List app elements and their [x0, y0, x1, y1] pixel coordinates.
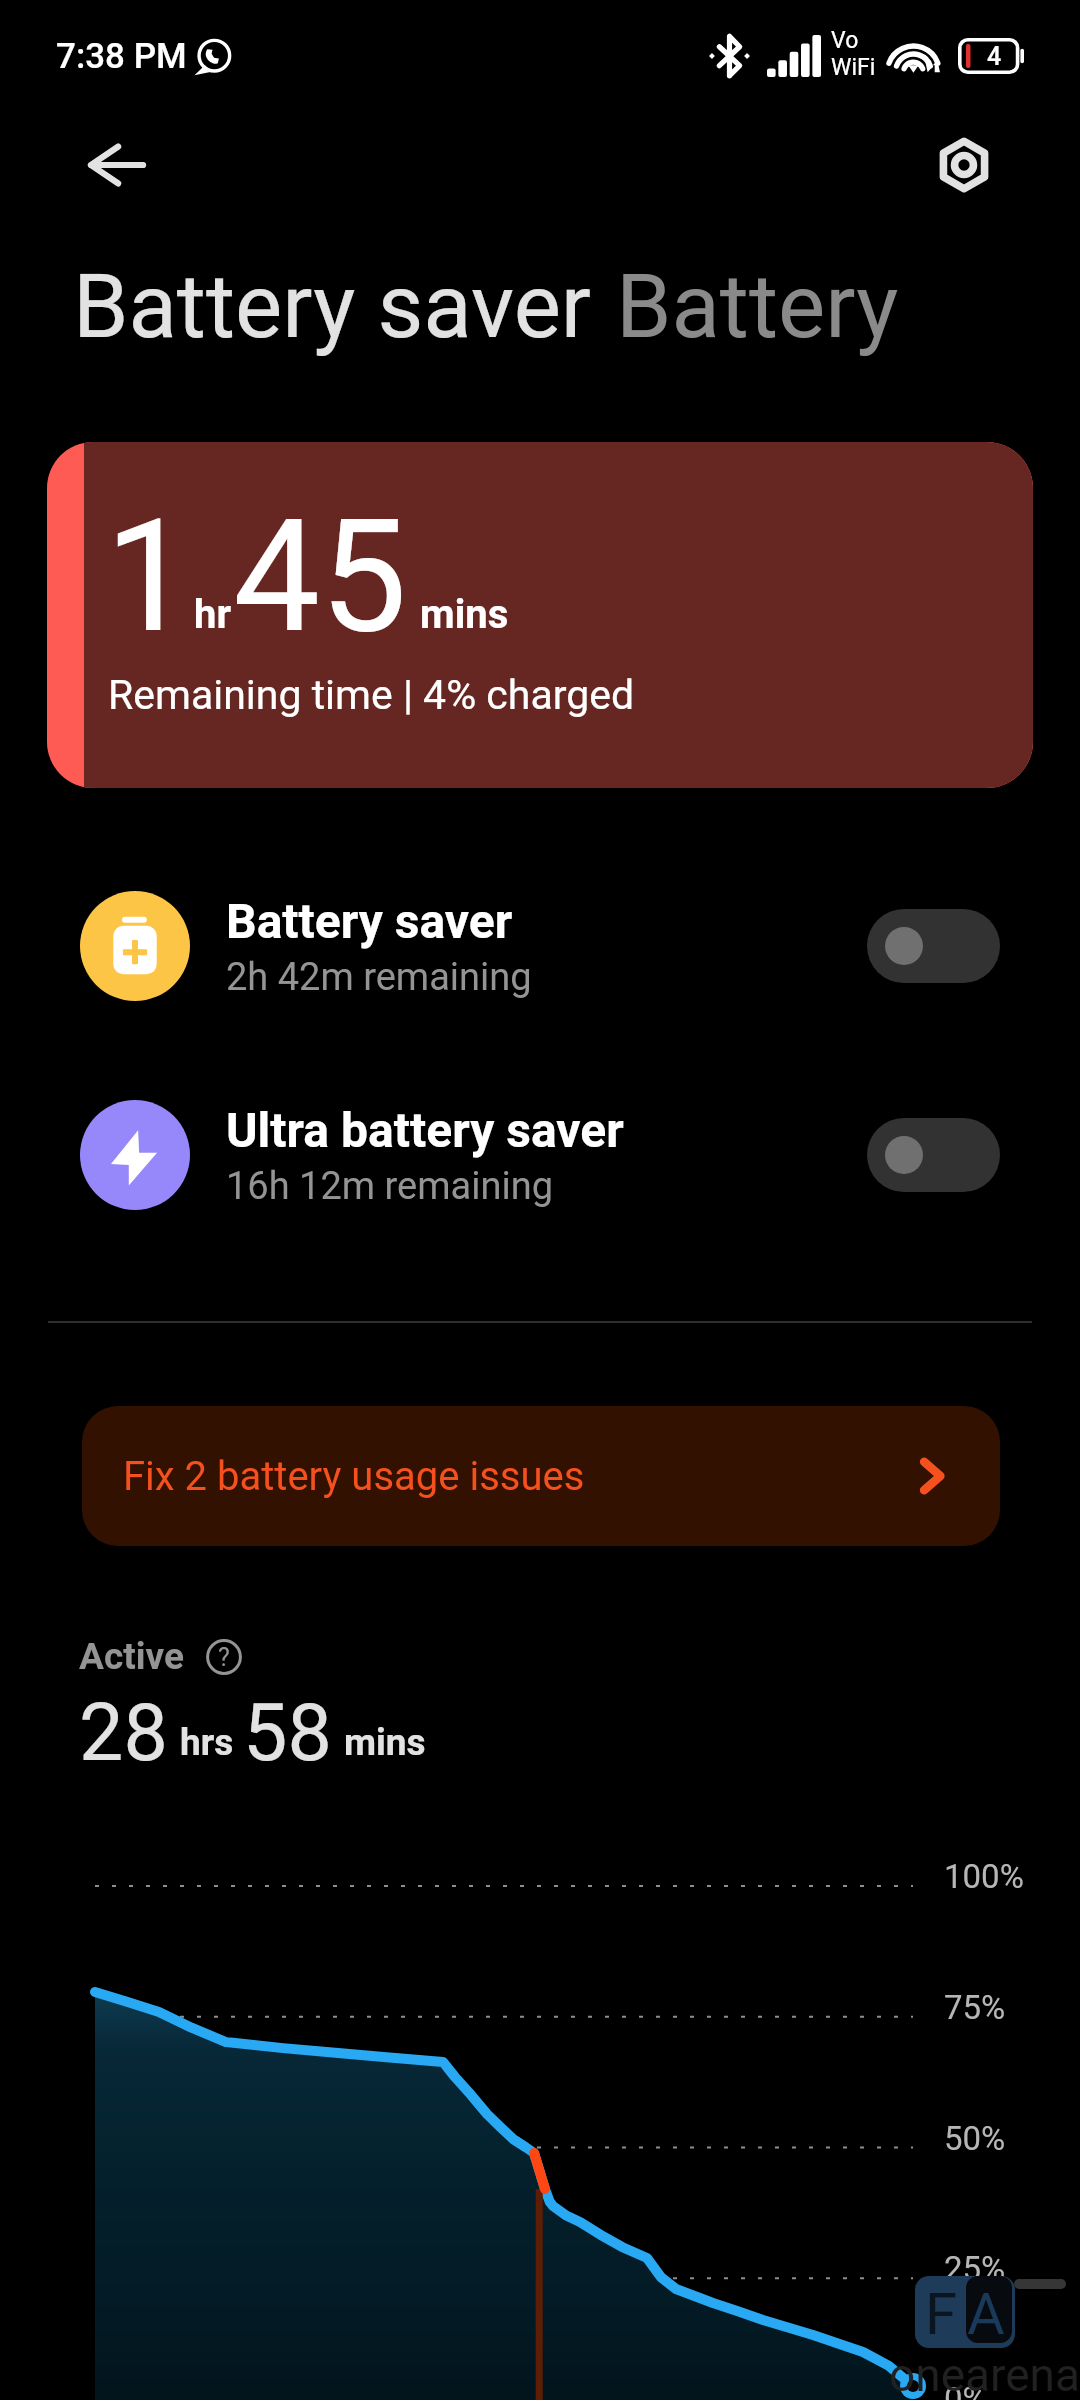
- staticText: ?: [218, 1643, 230, 1672]
- button[interactable]: Ultra battery saver: [48, 1100, 1032, 1210]
- staticText: Fix 2 battery usage issues: [123, 1453, 585, 1500]
- staticText: 16h 12m remaining: [226, 1164, 553, 1209]
- staticText: 45: [233, 486, 408, 668]
- staticText: 28: [79, 1687, 168, 1780]
- button[interactable]: Battery saver toggle: [867, 909, 1000, 983]
- staticText: Vo: [831, 27, 859, 54]
- staticText: 75%: [944, 1988, 1006, 2027]
- staticText: mins: [344, 1721, 426, 1764]
- button[interactable]: 1: [47, 442, 1033, 788]
- staticText: Battery saver: [226, 893, 513, 949]
- staticText: A: [967, 2280, 1005, 2348]
- staticText: 100%: [944, 1857, 1024, 1896]
- staticText: WiFi: [831, 54, 876, 81]
- staticText: Ultra battery saver: [226, 1102, 624, 1158]
- staticText: onearena: [889, 2348, 1080, 2400]
- staticText: Remaining time | 4% charged: [108, 671, 635, 719]
- staticText: 7:38 PM: [56, 36, 187, 77]
- staticText: mins: [420, 591, 509, 638]
- staticText: hr: [194, 591, 232, 638]
- staticText: 2h 42m remaining: [226, 955, 532, 1000]
- button[interactable]: Ultra battery saver toggle: [867, 1118, 1000, 1192]
- button[interactable]: Battery: [616, 236, 899, 376]
- staticText: Active: [79, 1635, 185, 1678]
- staticText: 1: [105, 486, 193, 668]
- button[interactable]: Battery saver: [73, 236, 592, 376]
- staticText: 50%: [944, 2119, 1006, 2158]
- staticText: hrs: [180, 1721, 234, 1764]
- staticText: 58: [243, 1687, 332, 1780]
- button[interactable]: Settings: [912, 113, 1016, 217]
- button[interactable]: Help: [206, 1639, 242, 1675]
- staticText: 0%: [944, 2380, 987, 2400]
- staticText: 4: [987, 42, 1002, 71]
- staticText: Battery saver: [73, 254, 592, 358]
- staticText: F: [925, 2280, 958, 2348]
- button[interactable]: Back: [63, 112, 171, 218]
- button[interactable]: Battery saver: [48, 891, 1032, 1001]
- staticText: 25%: [944, 2249, 1006, 2288]
- button[interactable]: Fix 2 battery usage issues: [82, 1406, 1000, 1546]
- staticText: Battery: [616, 254, 899, 358]
